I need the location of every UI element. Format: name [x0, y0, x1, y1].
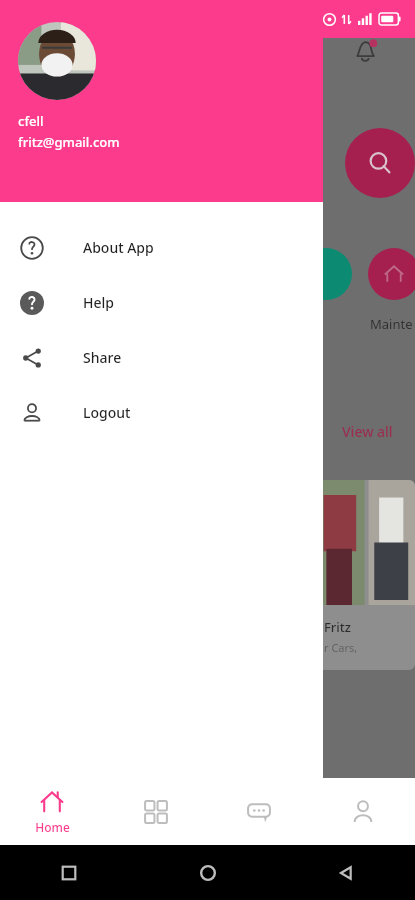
- button[interactable]: Navigation item: [213, 793, 305, 831]
- button[interactable]: Maintenance: [368, 248, 415, 300]
- staticText: Help: [83, 293, 114, 312]
- button[interactable]: Fritz: [318, 480, 415, 670]
- button[interactable]: Profile picture: [18, 22, 96, 100]
- button[interactable]: Help: [0, 275, 323, 330]
- staticText: Home: [35, 819, 70, 835]
- button[interactable]: Logout: [0, 385, 323, 440]
- button[interactable]: Navigation item: [110, 793, 202, 831]
- staticText: Share: [83, 348, 122, 367]
- button[interactable]: Category: [300, 248, 352, 300]
- staticText: About App: [83, 238, 154, 257]
- staticText: Fritz: [324, 618, 352, 636]
- staticText: Mainte: [370, 315, 413, 333]
- button[interactable]: Navigation item: [317, 793, 409, 831]
- button[interactable]: View all: [342, 422, 393, 441]
- staticText: r Cars,: [324, 640, 358, 655]
- button[interactable]: About App: [0, 220, 323, 275]
- staticText: Logout: [83, 403, 131, 422]
- button[interactable]: Home: [6, 783, 98, 841]
- staticText: fritz@gmail.com: [18, 133, 120, 151]
- button[interactable]: Search: [345, 128, 415, 198]
- button[interactable]: Share: [0, 330, 323, 385]
- staticText: 12:18: [14, 10, 50, 29]
- staticText: cfell: [18, 112, 44, 130]
